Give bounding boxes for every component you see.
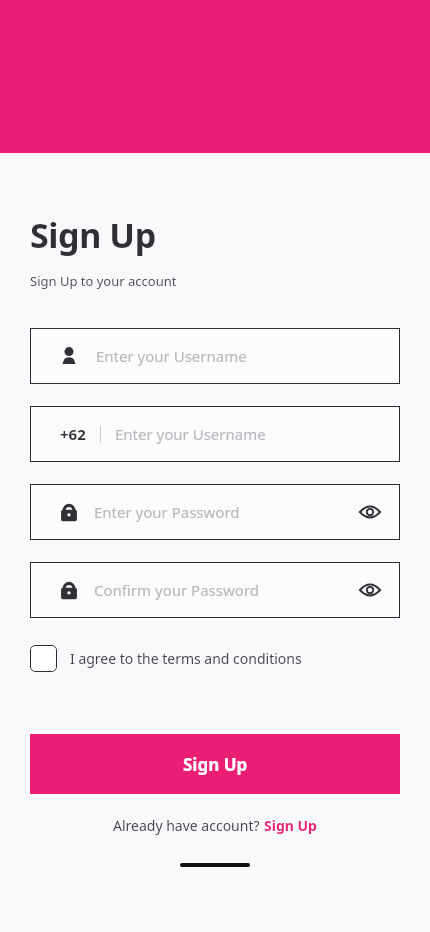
button[interactable]: Already have account? xyxy=(113,816,317,835)
button[interactable]: Phone number input xyxy=(30,406,400,462)
staticText: Enter your Username xyxy=(96,346,247,366)
staticText: Sign Up xyxy=(264,816,317,835)
staticText: Enter your Username xyxy=(115,424,266,444)
button[interactable]: I agree to the terms and conditions xyxy=(30,645,400,672)
button[interactable]: Confirm password input xyxy=(30,562,400,618)
staticText: Already have account? xyxy=(113,816,264,835)
staticText: I agree to the terms and conditions xyxy=(70,649,302,668)
button[interactable]: Password input xyxy=(30,484,400,540)
staticText: Sign Up xyxy=(183,753,248,776)
staticText: Enter your Password xyxy=(94,502,350,522)
staticText: +62 xyxy=(60,424,86,444)
staticText: Sign Up xyxy=(30,212,156,258)
button[interactable]: Sign Up xyxy=(30,734,400,794)
staticText: Sign Up to your account xyxy=(30,272,177,290)
button[interactable]: Show password xyxy=(350,492,390,532)
button[interactable]: Username input xyxy=(30,328,400,384)
staticText: Confirm your Password xyxy=(94,580,350,600)
button[interactable]: Show confirm password xyxy=(350,570,390,610)
